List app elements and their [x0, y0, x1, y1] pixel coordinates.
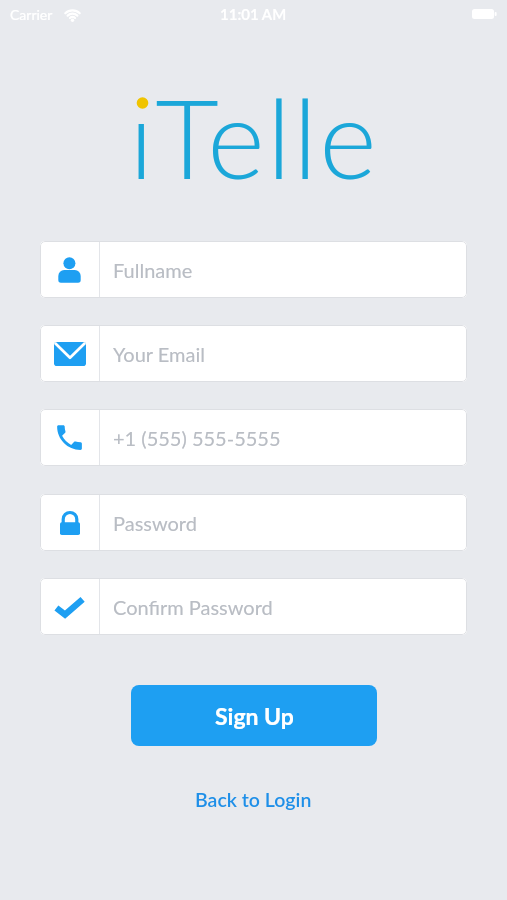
button[interactable]: +1 (555) 555-5555 [40, 409, 467, 466]
button[interactable]: Fullname [40, 241, 467, 298]
button[interactable]: Sign Up [131, 685, 377, 746]
staticText: Carrier [10, 6, 53, 23]
button[interactable]: Back to Login [0, 782, 507, 816]
staticText: Fullname [113, 258, 193, 282]
staticText: Back to Login [195, 788, 312, 811]
staticText: Your Email [113, 342, 205, 366]
staticText: 11:01 AM [220, 5, 287, 23]
button[interactable]: Password [40, 494, 467, 551]
staticText: +1 (555) 555-5555 [113, 426, 281, 450]
staticText: Sign Up [215, 702, 294, 730]
staticText: Password [113, 511, 197, 535]
button[interactable]: Confirm Password [40, 578, 467, 635]
staticText: Confirm Password [113, 595, 273, 619]
button[interactable]: Your Email [40, 325, 467, 382]
staticText: ıTelle [129, 70, 379, 202]
